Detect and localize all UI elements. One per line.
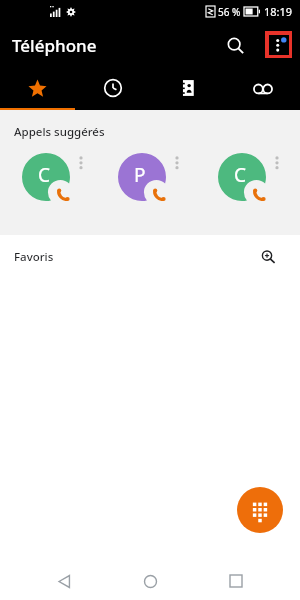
button[interactable]: Messagerie vocale: [225, 68, 300, 110]
staticText: P: [134, 162, 146, 188]
button[interactable]: Agrandir: [254, 243, 282, 271]
staticText: Téléphone: [12, 34, 97, 57]
button[interactable]: Clavier: [237, 487, 283, 533]
button[interactable]: Accueil: [128, 562, 172, 600]
button[interactable]: Plus d'options: [265, 31, 292, 58]
button[interactable]: Rechercher: [218, 28, 252, 62]
staticText: C: [234, 162, 247, 188]
button[interactable]: Retour: [42, 562, 86, 600]
staticText: 18:19: [264, 4, 293, 19]
button[interactable]: C: [218, 153, 300, 201]
button[interactable]: Récents: [75, 68, 150, 110]
button[interactable]: P: [118, 153, 200, 201]
button[interactable]: Favoris: [0, 68, 75, 110]
button[interactable]: Contacts: [150, 68, 225, 110]
staticText: C: [38, 162, 51, 188]
staticText: Favoris: [14, 249, 54, 265]
button[interactable]: Applications récentes: [214, 562, 258, 600]
staticText: Appels suggérés: [14, 124, 105, 140]
staticText: 56 %: [218, 5, 241, 19]
button[interactable]: C: [22, 153, 100, 201]
